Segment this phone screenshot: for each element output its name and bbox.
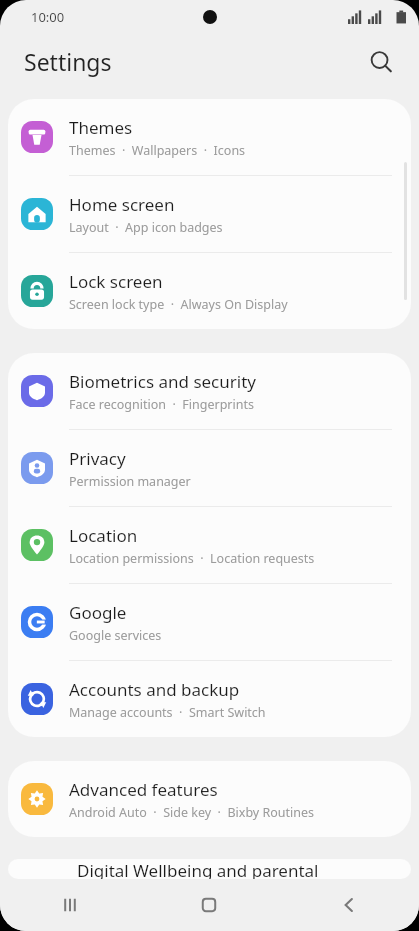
button[interactable]: Back <box>279 879 419 931</box>
staticText: Themes <box>69 116 133 139</box>
staticText: Google <box>69 601 127 624</box>
staticText: Layout · App icon badges <box>69 219 223 236</box>
staticText: Advanced features <box>69 778 218 801</box>
button[interactable]: Digital Wellbeing and parental <box>8 859 411 879</box>
staticText: Location <box>69 524 138 547</box>
staticText: Accounts and backup <box>69 678 240 701</box>
staticText: Screen lock type · Always On Display <box>69 296 288 313</box>
button[interactable]: Home screen <box>8 176 411 252</box>
staticText: Manage accounts · Smart Switch <box>69 704 266 721</box>
staticText: Google services <box>69 627 162 644</box>
button[interactable]: Search <box>359 40 403 84</box>
button[interactable]: Accounts and backup <box>8 661 411 737</box>
staticText: Face recognition · Fingerprints <box>69 396 254 413</box>
staticText: Themes · Wallpapers · Icons <box>69 142 246 159</box>
staticText: Biometrics and security <box>69 370 256 393</box>
staticText: 10:00 <box>31 8 65 26</box>
staticText: Android Auto · Side key · Bixby Routines <box>69 804 315 821</box>
staticText: Home screen <box>69 193 175 216</box>
staticText: Location permissions · Location requests <box>69 550 315 567</box>
staticText: Digital Wellbeing and parental <box>77 859 319 879</box>
button[interactable]: Biometrics and security <box>8 353 411 429</box>
button[interactable]: Home <box>139 879 279 931</box>
staticText: Privacy <box>69 447 126 470</box>
staticText: Lock screen <box>69 270 163 293</box>
button[interactable]: Google <box>8 584 411 660</box>
button[interactable]: Privacy <box>8 430 411 506</box>
staticText: Permission manager <box>69 473 191 490</box>
staticText: Settings <box>24 46 112 77</box>
button[interactable]: Recent apps <box>0 879 139 931</box>
button[interactable]: Themes <box>8 99 411 175</box>
button[interactable]: Advanced features <box>8 761 411 837</box>
button[interactable]: Location <box>8 507 411 583</box>
button[interactable]: Lock screen <box>8 253 411 329</box>
